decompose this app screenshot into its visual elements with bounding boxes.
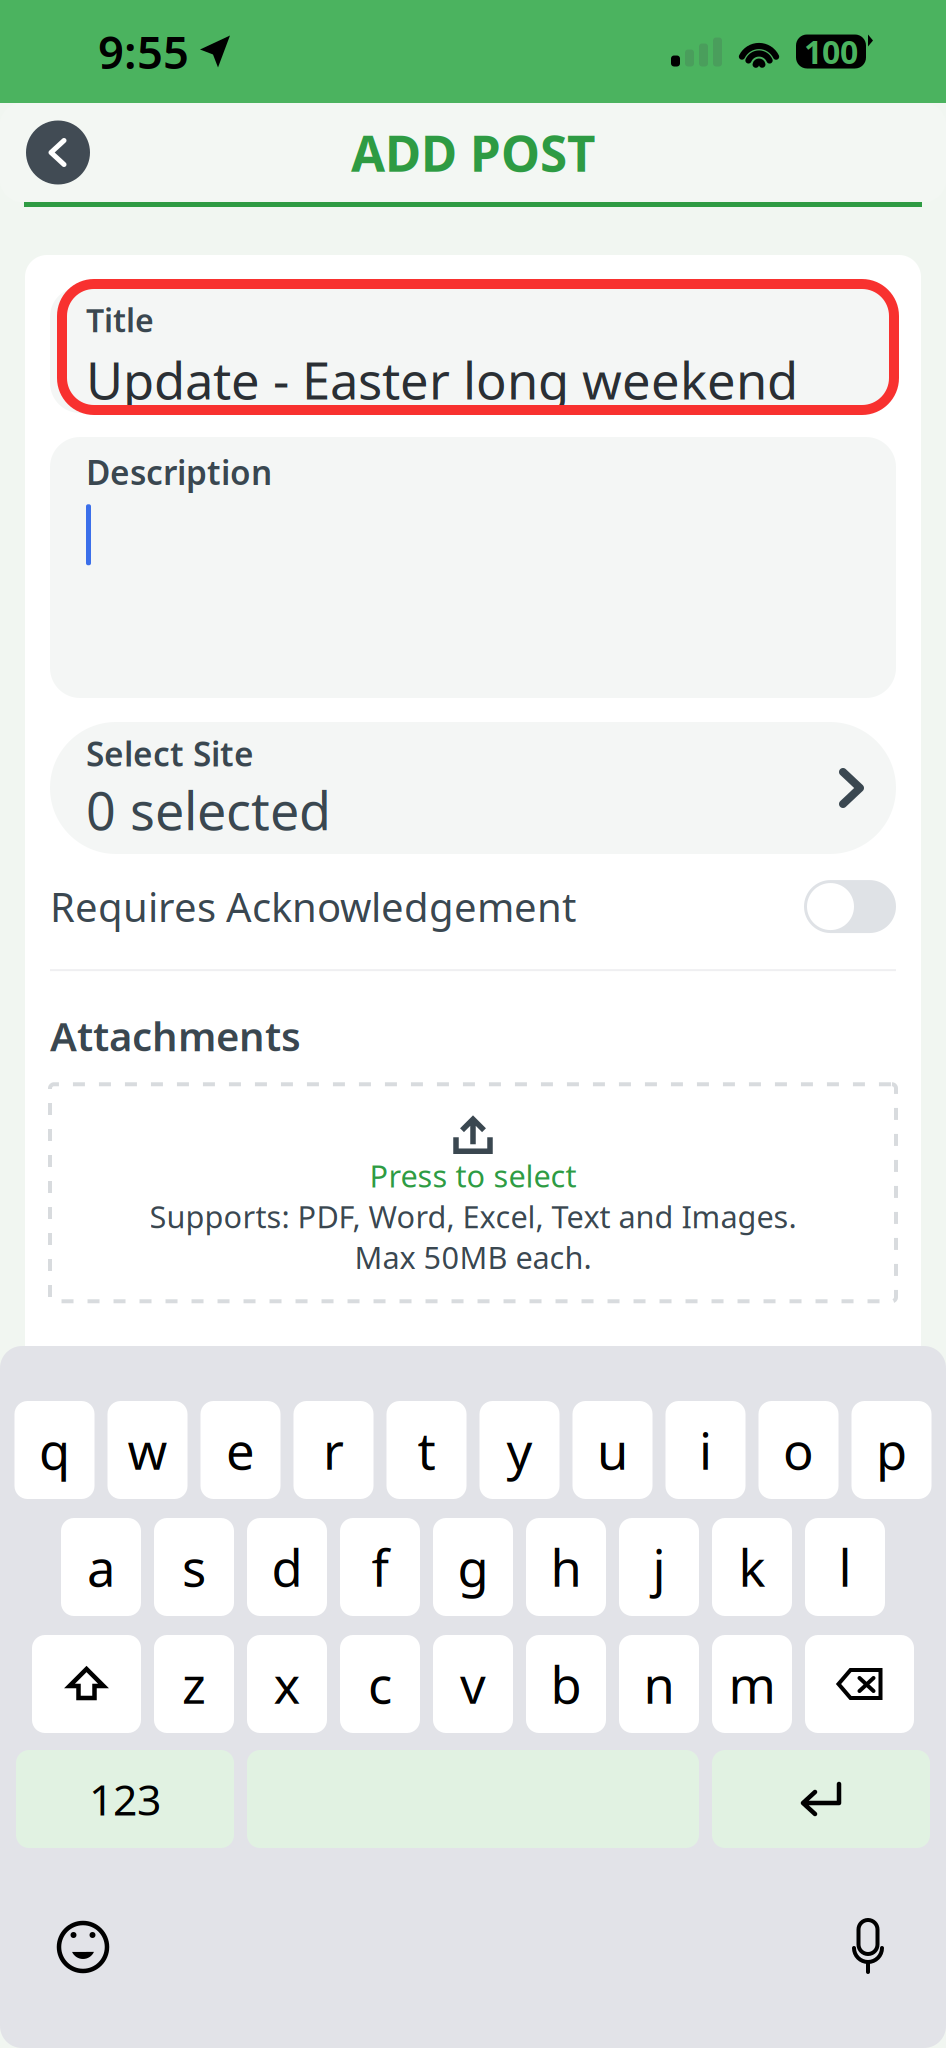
button[interactable]: Back bbox=[26, 120, 90, 184]
button[interactable]: o bbox=[758, 1401, 838, 1499]
staticText: Attachments bbox=[50, 1009, 301, 1062]
staticText: Description bbox=[86, 450, 272, 494]
button[interactable]: k bbox=[712, 1518, 792, 1616]
button[interactable]: Dictation bbox=[848, 1920, 888, 1974]
button[interactable]: c bbox=[340, 1635, 420, 1733]
staticText: 100 bbox=[804, 30, 858, 73]
staticText: Max 50MB each. bbox=[354, 1237, 591, 1277]
staticText: 0 selected bbox=[86, 776, 331, 845]
button[interactable]: 123 bbox=[16, 1750, 234, 1848]
button[interactable]: b bbox=[526, 1635, 606, 1733]
staticText: ADD POST bbox=[351, 120, 595, 185]
button[interactable]: v bbox=[433, 1635, 513, 1733]
button[interactable]: f bbox=[340, 1518, 420, 1616]
button[interactable]: a bbox=[61, 1518, 141, 1616]
staticText: z bbox=[182, 1650, 206, 1718]
button[interactable]: h bbox=[526, 1518, 606, 1616]
staticText: s bbox=[182, 1533, 206, 1601]
button[interactable]: u bbox=[572, 1401, 652, 1499]
button[interactable]: m bbox=[712, 1635, 792, 1733]
button[interactable]: w bbox=[107, 1401, 187, 1499]
staticText: o bbox=[783, 1416, 814, 1484]
button[interactable]: Shift bbox=[32, 1635, 141, 1733]
staticText: t bbox=[417, 1416, 435, 1484]
staticText: h bbox=[550, 1533, 581, 1601]
staticText: Supports: PDF, Word, Excel, Text and Ima… bbox=[149, 1196, 796, 1237]
button[interactable]: g bbox=[433, 1518, 513, 1616]
button[interactable]: Requires Acknowledgement bbox=[804, 880, 896, 933]
staticText: y bbox=[506, 1416, 532, 1484]
staticText: u bbox=[597, 1416, 628, 1484]
staticText: m bbox=[728, 1650, 775, 1718]
staticText: Requires Acknowledgement bbox=[50, 880, 576, 933]
staticText: n bbox=[643, 1650, 674, 1718]
staticText: d bbox=[271, 1533, 302, 1601]
staticText: i bbox=[699, 1416, 712, 1484]
button[interactable]: p bbox=[851, 1401, 931, 1499]
button[interactable]: e bbox=[200, 1401, 280, 1499]
staticText: p bbox=[876, 1416, 907, 1484]
button[interactable]: l bbox=[805, 1518, 885, 1616]
button[interactable]: q bbox=[14, 1401, 94, 1499]
staticText: k bbox=[738, 1533, 765, 1601]
staticText: r bbox=[323, 1416, 344, 1484]
button[interactable]: i bbox=[665, 1401, 745, 1499]
staticText: 9:55 bbox=[98, 21, 189, 82]
staticText: f bbox=[371, 1533, 388, 1601]
staticText: Press to select bbox=[369, 1155, 576, 1196]
button[interactable]: Return bbox=[712, 1750, 930, 1848]
button[interactable]: j bbox=[619, 1518, 699, 1616]
staticText: 123 bbox=[89, 1771, 161, 1827]
button[interactable]: Emoji bbox=[58, 1921, 108, 1973]
button[interactable]: t bbox=[386, 1401, 466, 1499]
staticText: v bbox=[460, 1650, 486, 1718]
staticText: Select Site bbox=[86, 731, 254, 776]
button[interactable]: y bbox=[479, 1401, 559, 1499]
button[interactable]: s bbox=[154, 1518, 234, 1616]
staticText: g bbox=[457, 1533, 488, 1601]
button[interactable]: z bbox=[154, 1635, 234, 1733]
staticText: l bbox=[838, 1533, 851, 1601]
staticText: w bbox=[127, 1416, 167, 1484]
staticText: b bbox=[550, 1650, 581, 1718]
staticText: q bbox=[39, 1416, 70, 1484]
staticText: e bbox=[226, 1416, 255, 1484]
staticText: a bbox=[87, 1533, 115, 1601]
button[interactable]: Press to select bbox=[50, 1084, 896, 1301]
button[interactable]: Select Site bbox=[50, 722, 896, 854]
staticText: c bbox=[368, 1650, 392, 1718]
staticText: Update - Easter long weekend bbox=[86, 346, 798, 413]
button[interactable]: n bbox=[619, 1635, 699, 1733]
button[interactable]: x bbox=[247, 1635, 327, 1733]
button[interactable]: d bbox=[247, 1518, 327, 1616]
staticText: x bbox=[273, 1650, 300, 1718]
button[interactable]: Delete bbox=[805, 1635, 914, 1733]
button[interactable]: r bbox=[293, 1401, 373, 1499]
staticText: Title bbox=[86, 299, 154, 341]
staticText: j bbox=[652, 1533, 665, 1601]
